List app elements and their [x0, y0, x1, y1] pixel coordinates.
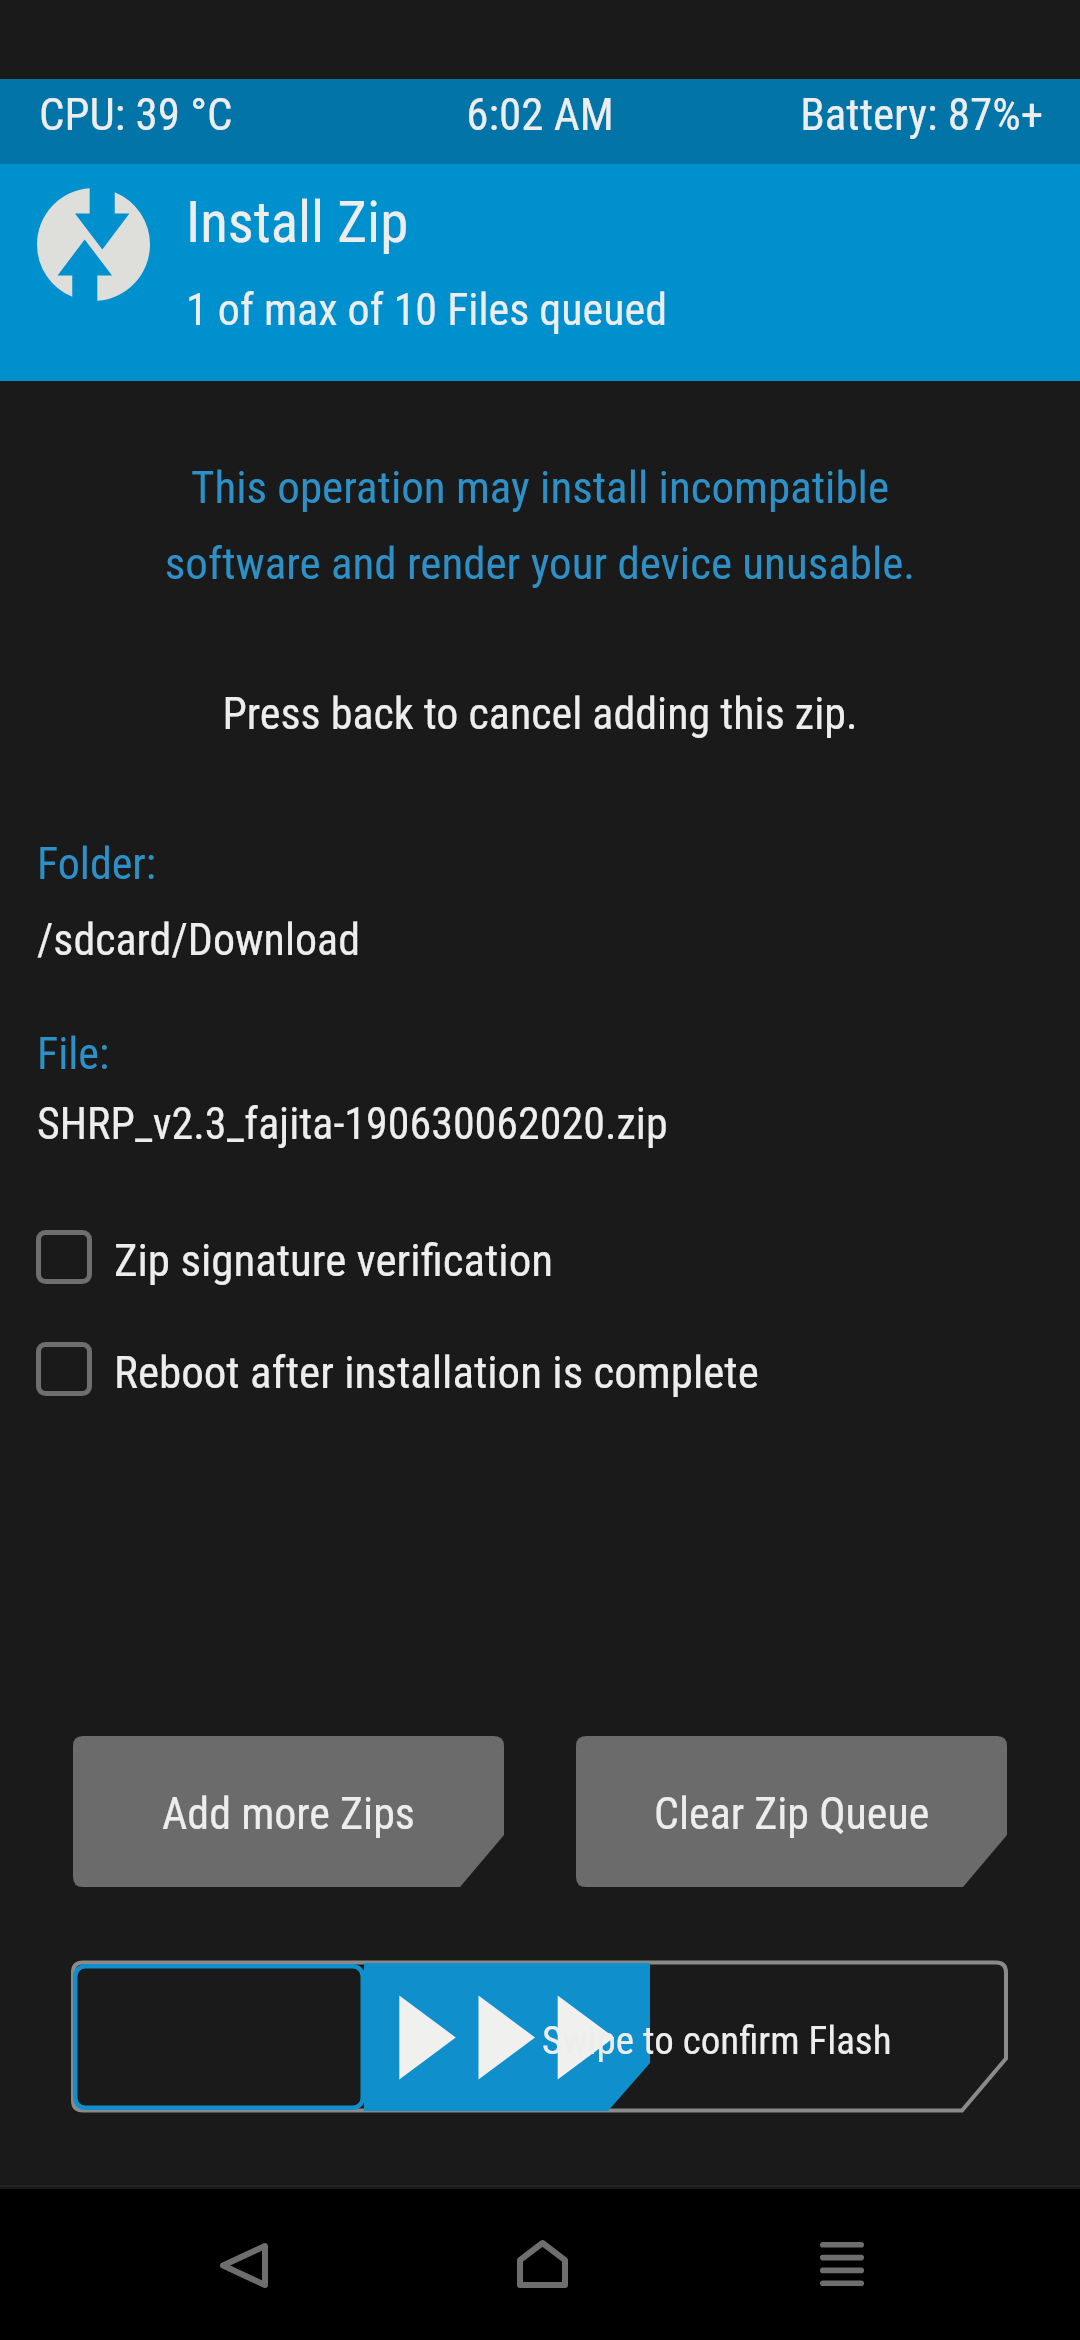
staticText: Swipe to confirm Flash [542, 2018, 892, 2064]
staticText: Press back to cancel adding this zip. [0, 688, 1080, 740]
staticText: Add more Zips [162, 1788, 415, 1840]
button[interactable]: TWRP logo [0, 164, 1080, 381]
staticText: software and render your device unusable… [0, 537, 1080, 590]
button[interactable]: Reboot after installation is complete [0, 1332, 1080, 1406]
button[interactable]: Back [169, 2189, 319, 2340]
staticText: CPU: 39 °C [39, 88, 233, 141]
staticText: File: [37, 1028, 110, 1080]
staticText: 1 of max of 10 Files queued [186, 284, 667, 336]
button[interactable]: Recent apps [767, 2189, 917, 2340]
staticText: Folder: [37, 838, 157, 890]
staticText: Battery: 87%+ [0, 88, 1043, 141]
staticText: Zip signature verification [114, 1234, 554, 1287]
other: TWRP logo [37, 188, 150, 301]
staticText: Install Zip [186, 189, 409, 256]
staticText: Reboot after installation is complete [114, 1346, 759, 1399]
button[interactable]: Swipe to confirm Flash [71, 1960, 1008, 2113]
button[interactable]: Zip signature verification [0, 1220, 1080, 1294]
button[interactable]: Home [467, 2189, 617, 2340]
button[interactable]: Add more Zips [73, 1736, 504, 1887]
staticText: This operation may install incompatible [0, 461, 1080, 514]
button[interactable]: Clear Zip Queue [576, 1736, 1007, 1887]
staticText: /sdcard/Download [37, 914, 360, 966]
staticText: Clear Zip Queue [654, 1788, 930, 1840]
staticText: SHRP_v2.3_fajita-190630062020.zip [37, 1098, 668, 1150]
staticText: 6:02 AM [0, 88, 1080, 141]
